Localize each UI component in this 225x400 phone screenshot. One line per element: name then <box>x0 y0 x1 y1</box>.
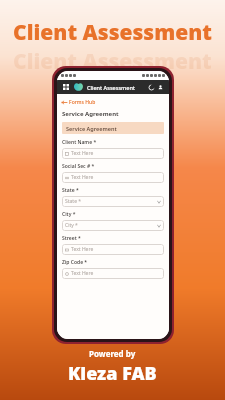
button[interactable]: City * <box>62 220 164 231</box>
staticText: Service Agreement <box>66 125 117 132</box>
staticText: Social Sec # * <box>62 163 95 170</box>
staticText: Kleza FAB <box>68 361 157 386</box>
staticText: State * <box>65 198 82 205</box>
button[interactable]: Text Here <box>62 148 164 159</box>
staticText: Client Assessment <box>13 47 212 76</box>
button[interactable]: Menu <box>61 82 71 92</box>
button[interactable]: State * <box>62 196 164 207</box>
staticText: State * <box>62 187 79 194</box>
staticText: Text Here <box>71 270 94 277</box>
button[interactable]: Text Here <box>62 244 164 255</box>
button[interactable]: Account <box>156 83 165 92</box>
staticText: City * <box>62 211 76 218</box>
staticText: Forms Hub <box>69 99 96 106</box>
staticText: Client Name * <box>62 139 97 146</box>
staticText: Service Agreement <box>62 110 119 118</box>
staticText: Client Assessment <box>13 18 212 47</box>
staticText: Text Here <box>71 174 94 181</box>
staticText: Powered by <box>89 348 136 359</box>
button[interactable]: Forms Hub <box>62 98 96 107</box>
staticText: Street * <box>62 235 81 242</box>
staticText: Client Assessment <box>87 84 135 91</box>
button[interactable]: Dark mode <box>147 83 156 92</box>
staticText: City * <box>65 222 78 229</box>
button[interactable]: Text Here <box>62 172 164 183</box>
staticText: Text Here <box>71 150 94 157</box>
button[interactable]: Text Here <box>62 268 164 279</box>
staticText: Text Here <box>71 246 94 253</box>
staticText: Zip Code * <box>62 259 88 266</box>
